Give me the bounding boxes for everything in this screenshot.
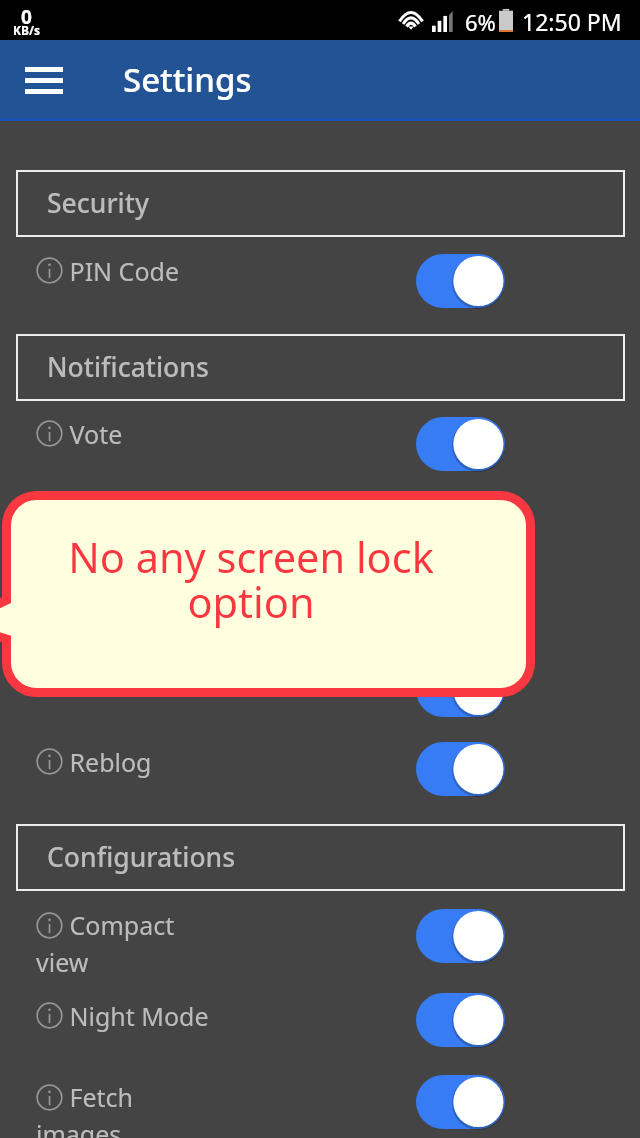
staticText: Notifications: [47, 349, 209, 385]
button[interactable]: i Follow: [0, 649, 640, 731]
button[interactable]: Comment, on: [416, 499, 505, 553]
staticText: 12:50 PM: [522, 6, 622, 37]
staticText: i Fetch images: [36, 1080, 212, 1138]
button[interactable]: i Fetch images: [0, 1061, 640, 1138]
staticText: Configurations: [47, 839, 236, 875]
button[interactable]: Reblog, on: [416, 742, 505, 796]
staticText: i Follow: [36, 655, 145, 689]
button[interactable]: Open navigation drawer: [12, 48, 76, 112]
button[interactable]: Security: [16, 170, 625, 237]
button[interactable]: i Compact view: [0, 895, 640, 977]
staticText: Settings: [123, 57, 252, 102]
staticText: i Compact view: [36, 908, 212, 979]
button[interactable]: Fetch images, on: [416, 1075, 505, 1129]
staticText: i Vote: [36, 417, 123, 451]
button[interactable]: i Comment: [0, 485, 640, 567]
button[interactable]: PIN Code, on: [416, 254, 505, 308]
staticText: i PIN Code: [36, 254, 180, 288]
staticText: i Reblog: [36, 745, 152, 779]
staticText: 0: [21, 4, 32, 30]
button[interactable]: i Night Mode: [0, 979, 640, 1061]
button[interactable]: Configurations: [16, 824, 625, 891]
button[interactable]: Follow, on: [416, 663, 505, 717]
staticText: Security: [47, 185, 149, 221]
button[interactable]: i Reblog: [0, 728, 640, 810]
staticText: 6%: [465, 7, 496, 37]
button[interactable]: i Mention: [0, 567, 640, 649]
button[interactable]: Compact view, on: [416, 909, 505, 963]
button[interactable]: i PIN Code: [0, 240, 640, 322]
button[interactable]: Vote, on: [416, 417, 505, 471]
staticText: KB/s: [13, 22, 40, 38]
button[interactable]: i Vote: [0, 403, 640, 485]
staticText: i Comment: [36, 499, 186, 533]
button[interactable]: Night Mode, on: [416, 993, 505, 1047]
staticText: i Night Mode: [36, 999, 209, 1033]
staticText: No any screen lock option: [21, 529, 481, 630]
button[interactable]: Notifications: [16, 334, 625, 401]
